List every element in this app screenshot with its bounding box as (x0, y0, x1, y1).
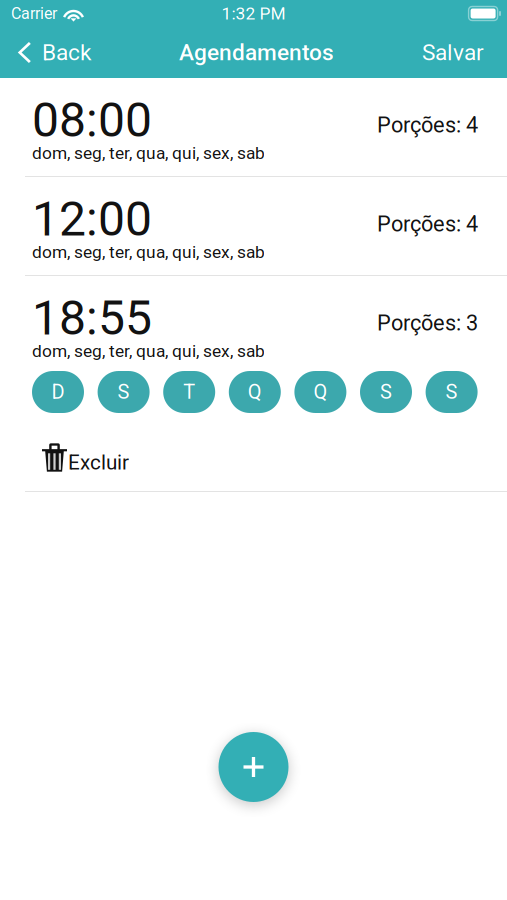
staticText: 12:00 (32, 191, 152, 247)
button[interactable]: T (163, 371, 215, 413)
staticText: S (380, 380, 392, 404)
staticText: Porções: 4 (377, 112, 478, 138)
staticText: 18:55 (32, 290, 152, 346)
button[interactable]: S (98, 371, 150, 413)
button[interactable]: Excluir (32, 446, 129, 479)
staticText: Q (248, 380, 262, 404)
button[interactable]: Salvar (410, 27, 507, 78)
button[interactable]: 12:00 (0, 177, 507, 276)
staticText: Carrier (11, 4, 57, 23)
button[interactable]: Back (0, 27, 103, 78)
button[interactable]: D (32, 371, 84, 413)
staticText: Porções: 3 (377, 310, 478, 336)
staticText: Salvar (422, 39, 484, 66)
staticText: S (446, 380, 458, 404)
staticText: Excluir (68, 450, 129, 475)
button[interactable]: S (360, 371, 412, 413)
staticText: 1:32 PM (221, 3, 285, 24)
button[interactable]: Q (294, 371, 346, 413)
staticText: dom, seg, ter, qua, qui, sex, sab (32, 242, 265, 262)
staticText: S (118, 380, 130, 404)
staticText: Agendamentos (179, 39, 334, 66)
staticText: Porções: 4 (377, 211, 478, 237)
staticText: dom, seg, ter, qua, qui, sex, sab (32, 143, 265, 163)
staticText: 08:00 (32, 92, 152, 148)
button[interactable]: Adicionar agendamento (218, 732, 288, 802)
staticText: D (51, 380, 64, 404)
staticText: T (183, 380, 195, 404)
staticText: Back (42, 39, 91, 66)
staticText: Q (313, 380, 327, 404)
button[interactable]: 18:55 (32, 296, 478, 359)
button[interactable]: 08:00 (0, 78, 507, 177)
staticText: dom, seg, ter, qua, qui, sex, sab (32, 341, 265, 361)
button[interactable]: Q (229, 371, 281, 413)
button[interactable]: S (426, 371, 478, 413)
